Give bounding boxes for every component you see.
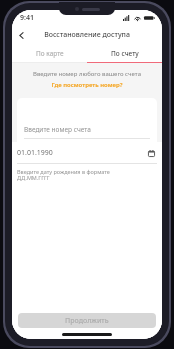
staticText: По карте bbox=[36, 49, 64, 58]
button[interactable]: Back bbox=[12, 26, 30, 44]
staticText: Введите дату рождения в формате ДД.ММ.ГГ… bbox=[17, 168, 110, 182]
button[interactable]: 01.01.1990 bbox=[12, 147, 162, 159]
staticText: По счету bbox=[111, 49, 139, 58]
staticText: 01.01.1990 bbox=[17, 148, 145, 158]
button[interactable]: По карте bbox=[12, 45, 87, 62]
button[interactable]: Продолжить bbox=[18, 313, 156, 328]
staticText: Введите номер счета bbox=[24, 125, 91, 134]
staticText: Продолжить bbox=[65, 316, 109, 326]
button[interactable]: Введите номер счета bbox=[17, 98, 157, 142]
button[interactable]: Где посмотреть номер? bbox=[47, 80, 127, 90]
other: Pick date bbox=[145, 147, 157, 159]
staticText: 9:41 bbox=[20, 13, 34, 23]
staticText: Восстановление доступа bbox=[44, 30, 130, 40]
staticText: Введите номер любого вашего счета bbox=[22, 70, 152, 78]
button[interactable]: По счету bbox=[87, 45, 162, 62]
